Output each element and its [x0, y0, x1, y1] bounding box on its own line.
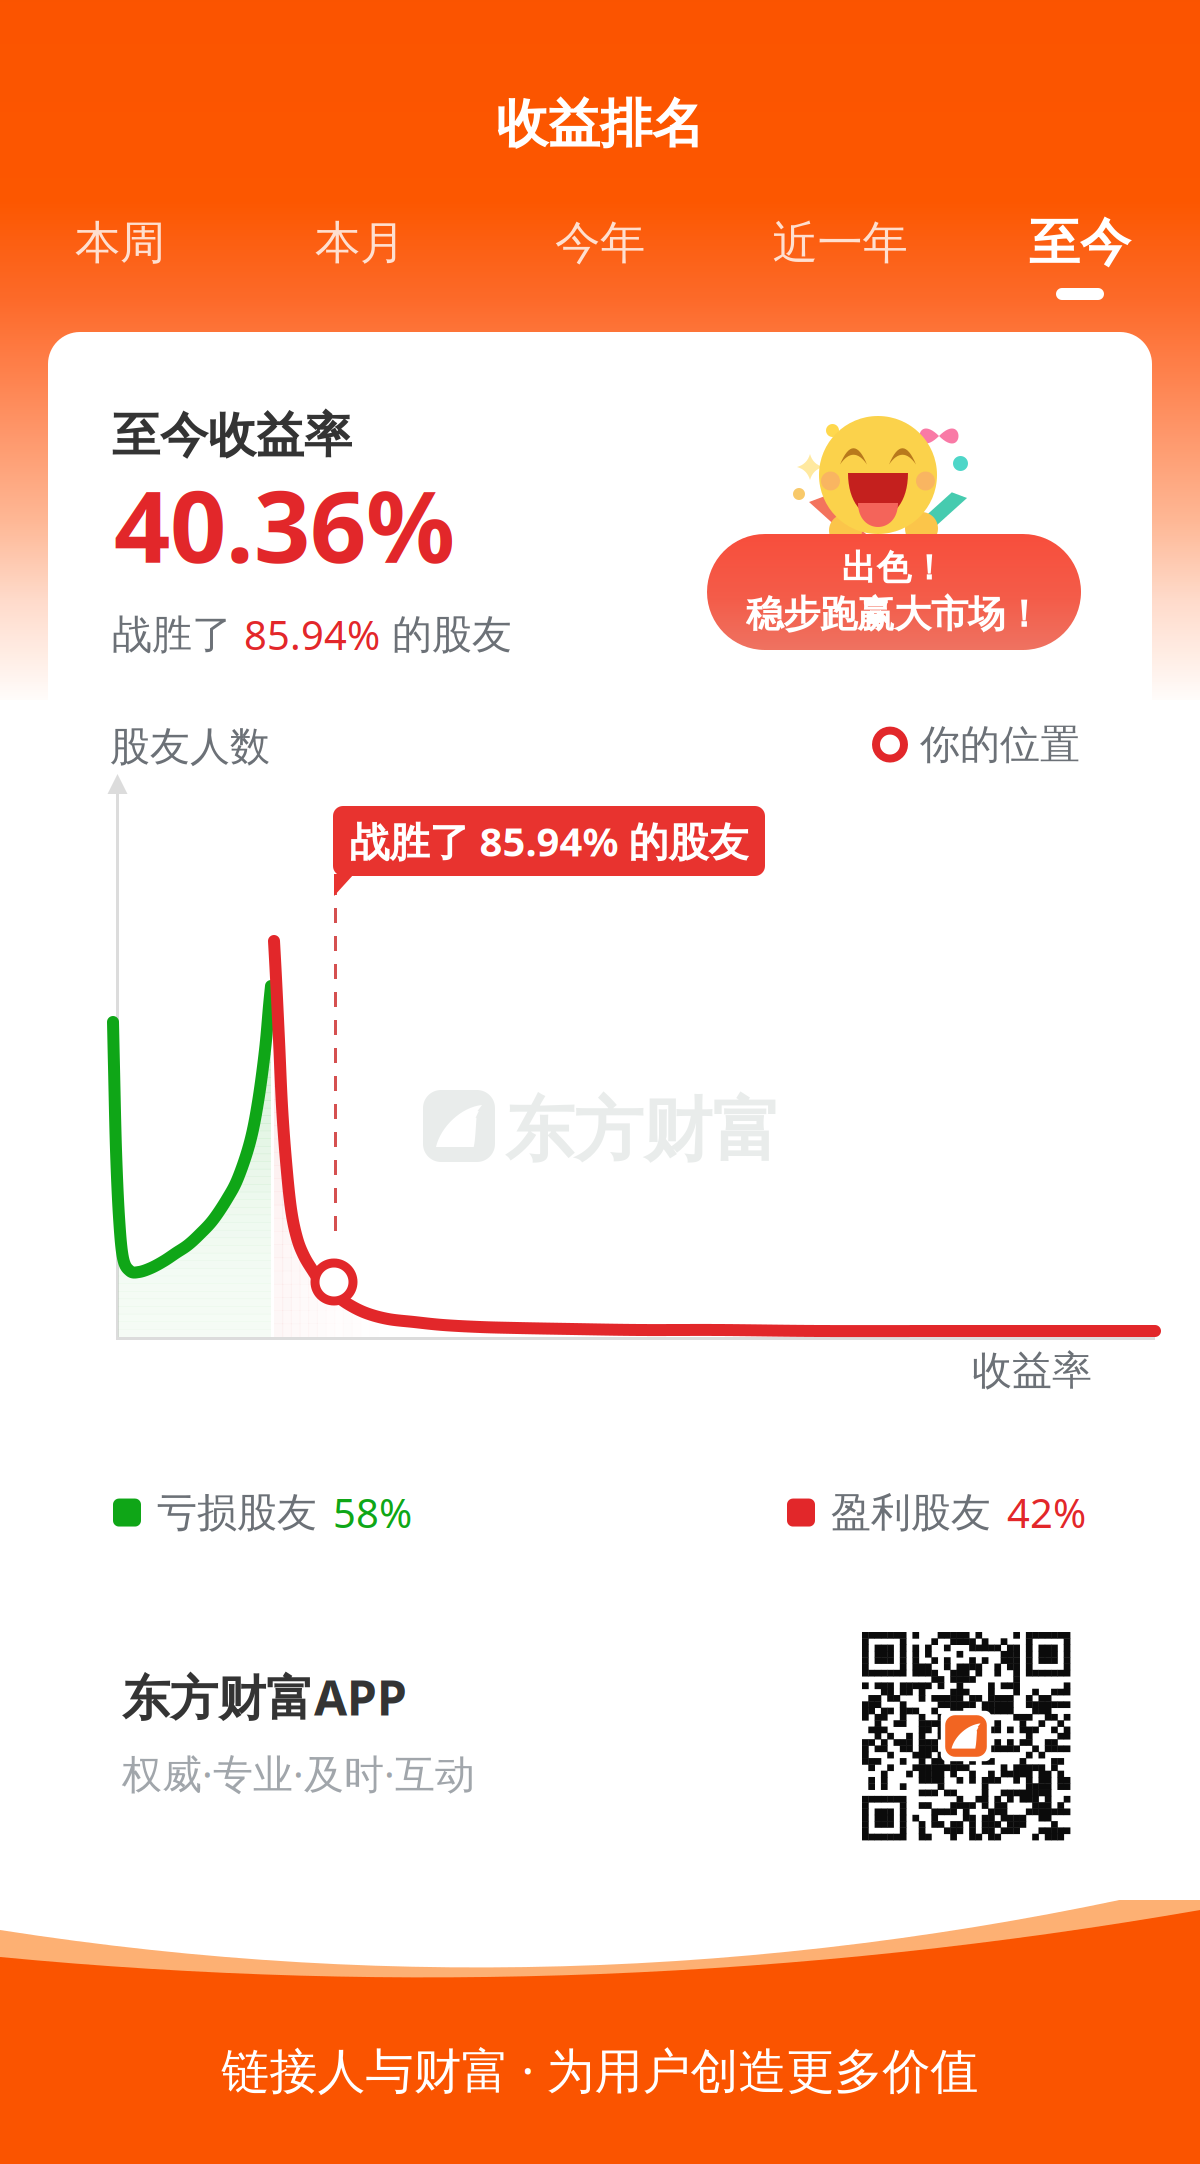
staticText: 股友人数	[110, 722, 270, 771]
button[interactable]: 今年	[480, 208, 720, 302]
button[interactable]: 近一年	[720, 208, 960, 302]
staticText: 本周	[75, 215, 165, 271]
staticText: 42%	[1007, 1486, 1086, 1539]
staticText: 稳步跑赢大市场！	[746, 591, 1042, 637]
staticText: 今年	[555, 215, 645, 271]
button[interactable]: 本周	[0, 208, 240, 302]
staticText: 本月	[315, 215, 405, 271]
staticText: 你的位置	[920, 720, 1080, 769]
staticText: 至今收益率	[112, 406, 352, 465]
staticText: 85.94%	[244, 608, 380, 661]
staticText: 盈利股友	[831, 1488, 991, 1537]
button[interactable]: 至今	[960, 208, 1200, 302]
staticText: 收益排名	[496, 92, 704, 156]
staticText: 权威·专业·及时·互动	[122, 1747, 475, 1800]
staticText: 近一年	[772, 215, 907, 271]
staticText: 58%	[333, 1486, 412, 1539]
staticText: 东方财富APP	[122, 1665, 407, 1729]
staticText: 收益率	[972, 1346, 1092, 1395]
staticText: 链接人与财富 · 为用户创造更多价值	[221, 2038, 978, 2102]
staticText: 亏损股友	[157, 1488, 317, 1537]
staticText: 战胜了 85.94% 的股友	[349, 814, 748, 867]
staticText: 战胜了	[112, 610, 244, 659]
staticText: 出色！	[841, 547, 946, 589]
staticText: 至今	[1029, 212, 1131, 274]
staticText: 40.36%	[114, 459, 455, 590]
staticText: 的股友	[380, 610, 512, 659]
staticText: 东方财富	[505, 1088, 781, 1173]
button[interactable]: 本月	[240, 208, 480, 302]
